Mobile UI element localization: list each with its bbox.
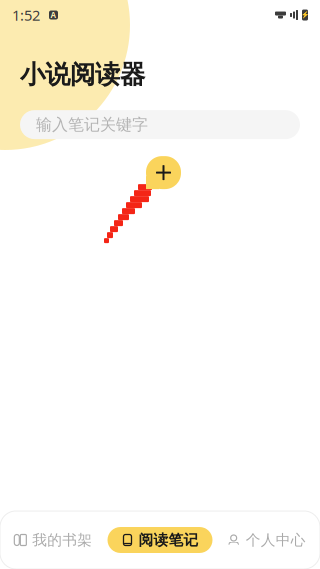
staticText: ⚡ xyxy=(301,11,309,19)
staticText: 个人中心 xyxy=(246,531,306,549)
staticText: 1:52 xyxy=(12,5,40,25)
staticText: 输入笔记关键字 xyxy=(36,115,148,134)
staticText: 小说阅读器 xyxy=(20,59,145,90)
staticText: 阅读笔记 xyxy=(138,531,198,549)
button[interactable]: 我的书架 xyxy=(0,511,107,569)
button[interactable]: 个人中心 xyxy=(213,511,320,569)
button[interactable]: 阅读笔记 xyxy=(107,511,213,569)
button[interactable]: Add note xyxy=(146,156,181,189)
staticText: 我的书架 xyxy=(32,531,92,549)
staticText: A xyxy=(50,10,56,20)
button[interactable]: 输入笔记关键字 xyxy=(20,110,300,139)
